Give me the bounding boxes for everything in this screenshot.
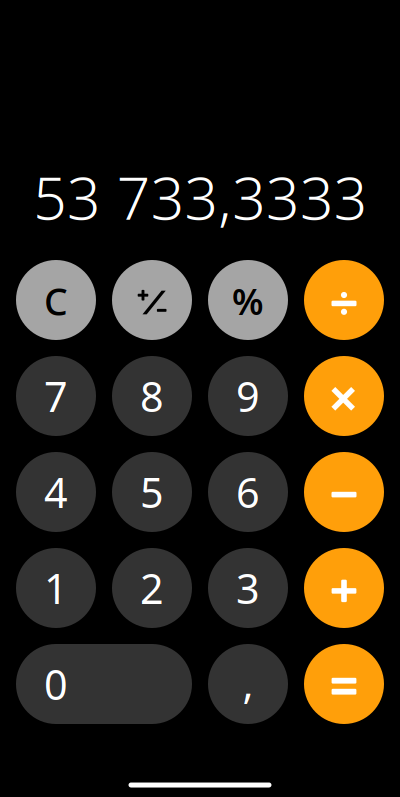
staticText: 1 xyxy=(44,561,68,615)
staticText: 4 xyxy=(44,465,68,519)
button[interactable]: 9 xyxy=(208,356,288,436)
button[interactable]: 1 xyxy=(16,548,96,628)
button[interactable]: 4 xyxy=(16,452,96,532)
staticText: , xyxy=(242,656,253,710)
button[interactable]: 5 xyxy=(112,452,192,532)
staticText: 6 xyxy=(236,465,260,519)
staticText: 3 xyxy=(236,561,260,615)
staticText: 53 733,3333 xyxy=(33,158,367,236)
button[interactable]: % xyxy=(208,260,288,340)
staticText: 2 xyxy=(140,561,164,615)
button[interactable]: Equals xyxy=(304,644,384,724)
button[interactable]: Plus minus xyxy=(112,260,192,340)
staticText: % xyxy=(232,277,264,325)
button[interactable]: 0 xyxy=(16,644,192,724)
button[interactable]: 3 xyxy=(208,548,288,628)
button[interactable]: , xyxy=(208,644,288,724)
staticText: 7 xyxy=(44,369,68,423)
button[interactable]: Minus xyxy=(304,452,384,532)
button[interactable]: Divide xyxy=(304,260,384,340)
button[interactable]: 2 xyxy=(112,548,192,628)
button[interactable]: 8 xyxy=(112,356,192,436)
staticText: 0 xyxy=(44,657,68,711)
button[interactable]: 6 xyxy=(208,452,288,532)
staticText: C xyxy=(44,276,68,326)
button[interactable]: C xyxy=(16,260,96,340)
staticText: 5 xyxy=(140,465,164,519)
button[interactable]: Plus xyxy=(304,548,384,628)
button[interactable]: Multiply xyxy=(304,356,384,436)
button[interactable]: 7 xyxy=(16,356,96,436)
staticText: 8 xyxy=(140,369,164,423)
staticText: 9 xyxy=(236,369,260,423)
